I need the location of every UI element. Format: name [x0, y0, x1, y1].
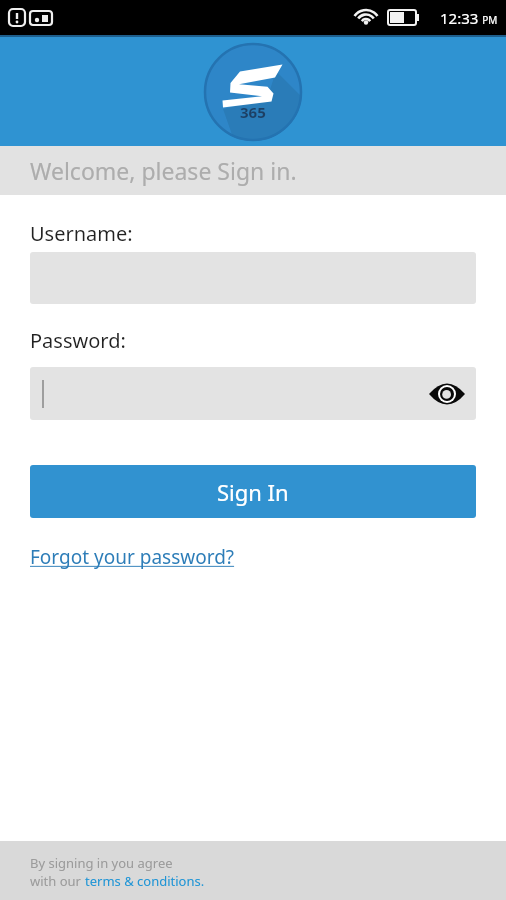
staticText: Username: — [30, 220, 133, 247]
staticText: terms & conditions. — [85, 872, 205, 890]
staticText: By signing in you agree — [30, 854, 173, 872]
button[interactable]: Sign In — [30, 465, 476, 518]
button[interactable]: Forgot your password? — [30, 544, 235, 570]
staticText: Password: — [30, 327, 126, 354]
staticText: Sign In — [217, 477, 289, 507]
staticText: Forgot your password? — [30, 544, 235, 570]
button[interactable] — [30, 367, 476, 420]
staticText: Welcome, please Sign in. — [30, 155, 297, 186]
staticText: 365 — [240, 102, 266, 122]
button[interactable]: with our — [30, 872, 205, 890]
staticText: with our — [30, 872, 85, 890]
staticText: 12:33 PM — [440, 8, 498, 28]
